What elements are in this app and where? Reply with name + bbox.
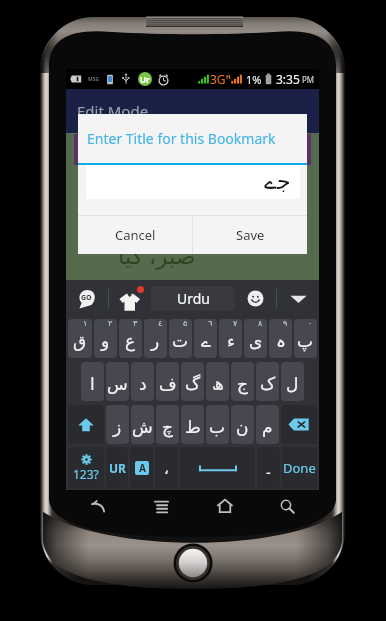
- staticText: ک: [260, 374, 276, 394]
- staticText: ٠: [308, 319, 313, 328]
- button[interactable]: Done: [282, 447, 317, 489]
- button[interactable]: گ: [181, 362, 204, 401]
- button[interactable]: Back: [66, 492, 130, 520]
- staticText: ب: [209, 417, 226, 437]
- staticText: ے: [201, 331, 211, 351]
- staticText: ج: [237, 374, 248, 394]
- button[interactable]: Save: [193, 216, 307, 254]
- staticText: MSG: [88, 76, 100, 83]
- staticText: ٧: [233, 319, 238, 328]
- staticText: ٥: [183, 319, 188, 328]
- button[interactable]: Symbols: [68, 447, 104, 489]
- button[interactable]: پ: [294, 319, 317, 358]
- button[interactable]: Go: [75, 287, 98, 310]
- staticText: ء: [227, 331, 235, 351]
- staticText: ۔: [264, 460, 273, 477]
- button[interactable]: چ: [156, 405, 179, 444]
- button[interactable]: UR: [106, 447, 128, 489]
- button[interactable]: Space: [180, 447, 255, 489]
- staticText: پ: [297, 331, 314, 351]
- staticText: ی: [249, 331, 263, 351]
- button[interactable]: ا: [81, 362, 104, 401]
- staticText: 3:35: [276, 71, 300, 87]
- button[interactable]: ب: [206, 405, 229, 444]
- staticText: ط: [185, 417, 201, 437]
- staticText: ھ: [212, 374, 224, 394]
- button[interactable]: ۔: [257, 447, 280, 489]
- staticText: ع: [125, 331, 136, 351]
- button[interactable]: Urdu: [151, 286, 235, 311]
- staticText: Save: [236, 226, 265, 244]
- staticText: 123?: [73, 466, 99, 482]
- staticText: ٦: [208, 319, 213, 328]
- button[interactable]: ق: [68, 319, 92, 358]
- button[interactable]: Cancel: [78, 216, 192, 254]
- staticText: Cancel: [115, 226, 156, 244]
- button[interactable]: ے: [194, 319, 217, 358]
- staticText: ق: [73, 331, 87, 351]
- staticText: ٢: [108, 319, 113, 328]
- staticText: س: [107, 374, 128, 394]
- staticText: PM: [302, 74, 315, 85]
- staticText: ٣: [133, 319, 138, 328]
- staticText: و: [101, 331, 110, 351]
- button[interactable]: ج: [231, 362, 254, 401]
- button[interactable]: ،: [155, 447, 178, 489]
- staticText: ا: [90, 374, 95, 394]
- button[interactable]: ک: [256, 362, 279, 401]
- staticText: Ur: [140, 74, 150, 85]
- staticText: ١: [83, 319, 88, 328]
- button[interactable]: Backspace: [281, 405, 317, 444]
- button[interactable]: ف: [156, 362, 179, 401]
- staticText: ہ: [276, 331, 286, 351]
- staticText: ف: [159, 374, 177, 394]
- staticText: د: [139, 374, 147, 394]
- staticText: Done: [283, 459, 316, 477]
- button[interactable]: ء: [219, 319, 242, 358]
- staticText: م: [262, 417, 273, 437]
- staticText: ن: [236, 417, 249, 437]
- staticText: GO: [81, 293, 92, 303]
- staticText: A: [139, 461, 146, 475]
- button[interactable]: ھ: [206, 362, 229, 401]
- staticText: Urdu: [177, 289, 210, 308]
- button[interactable]: ہ: [269, 319, 292, 358]
- button[interactable]: ل: [281, 362, 304, 401]
- staticText: Enter Title for this Bookmark: [87, 129, 276, 148]
- staticText: 3G: [210, 71, 226, 87]
- button[interactable]: س: [106, 362, 129, 401]
- button[interactable]: ن: [231, 405, 254, 444]
- button[interactable]: ی: [244, 319, 267, 358]
- button[interactable]: Shift: [68, 405, 104, 444]
- staticText: جے: [264, 169, 291, 195]
- staticText: ش: [132, 417, 153, 437]
- staticText: ل: [286, 374, 299, 394]
- button[interactable]: Menu: [130, 492, 193, 520]
- button[interactable]: Theme: [119, 287, 143, 311]
- staticText: ت: [172, 331, 189, 351]
- staticText: H: [226, 73, 231, 81]
- button[interactable]: Language: [130, 447, 153, 489]
- button[interactable]: Emoji: [244, 287, 267, 310]
- staticText: ٨: [258, 319, 263, 328]
- staticText: Edit Mode: [77, 101, 149, 121]
- button[interactable]: ع: [119, 319, 142, 358]
- button[interactable]: و: [94, 319, 117, 358]
- button[interactable]: د: [131, 362, 154, 401]
- staticText: ٤: [158, 319, 163, 328]
- button[interactable]: ش: [131, 405, 154, 444]
- button[interactable]: ر: [144, 319, 167, 358]
- staticText: UR: [109, 460, 126, 476]
- staticText: ر: [151, 331, 160, 351]
- staticText: چ: [162, 417, 173, 437]
- staticText: ،: [164, 460, 169, 477]
- button[interactable]: Home: [193, 492, 256, 520]
- button[interactable]: ز: [106, 405, 129, 444]
- button[interactable]: م: [256, 405, 279, 444]
- button[interactable]: Hide keyboard: [287, 287, 310, 310]
- staticText: 1%: [246, 72, 262, 87]
- button[interactable]: ط: [181, 405, 204, 444]
- button[interactable]: Search: [256, 492, 319, 520]
- button[interactable]: ت: [169, 319, 192, 358]
- staticText: صبر، کیا: [118, 239, 196, 270]
